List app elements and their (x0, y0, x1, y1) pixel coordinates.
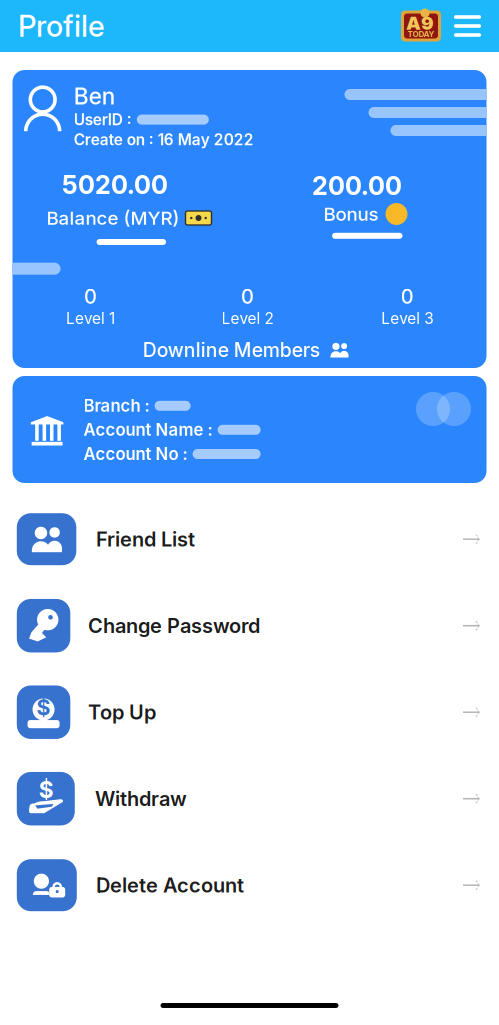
staticText: Account Name : (84, 420, 213, 440)
staticText: TODAY (407, 29, 434, 39)
button[interactable]: Friend List (0, 496, 499, 582)
button[interactable]: Downline Members (143, 338, 350, 362)
staticText: Withdraw (95, 787, 187, 811)
staticText: 5020.00 (62, 169, 168, 200)
button[interactable]: $ (0, 669, 499, 755)
staticText: Change Password (88, 614, 260, 638)
staticText: $ (39, 776, 54, 803)
staticText: Profile (18, 8, 105, 44)
staticText: $ (36, 695, 50, 720)
staticText: Branch : (84, 396, 150, 416)
button[interactable]: Change Password (0, 582, 499, 669)
staticText: Ben (74, 82, 115, 110)
staticText: Level 3 (381, 309, 433, 328)
staticText: Downline Members (143, 338, 320, 362)
staticText: Top Up (88, 700, 156, 724)
staticText: 0 (84, 284, 97, 309)
staticText: Level 2 (221, 309, 273, 328)
button[interactable]: A9 Today (401, 9, 441, 42)
staticText: Bonus (323, 203, 378, 225)
staticText: UserID : (74, 110, 132, 129)
button[interactable]: Menu (454, 15, 481, 37)
staticText: Balance (MYR) (46, 207, 179, 229)
staticText: Create on : 16 May 2022 (74, 130, 254, 149)
staticText: Level 1 (66, 309, 115, 328)
staticText: 200.00 (312, 171, 402, 201)
staticText: 0 (241, 284, 254, 309)
staticText: Account No : (84, 444, 188, 464)
staticText: Delete Account (96, 873, 244, 897)
button[interactable]: $ (0, 755, 499, 842)
button[interactable]: Delete Account (0, 842, 499, 928)
staticText: Friend List (96, 527, 195, 551)
staticText: 0 (401, 284, 414, 309)
staticText: A9 (406, 12, 434, 34)
